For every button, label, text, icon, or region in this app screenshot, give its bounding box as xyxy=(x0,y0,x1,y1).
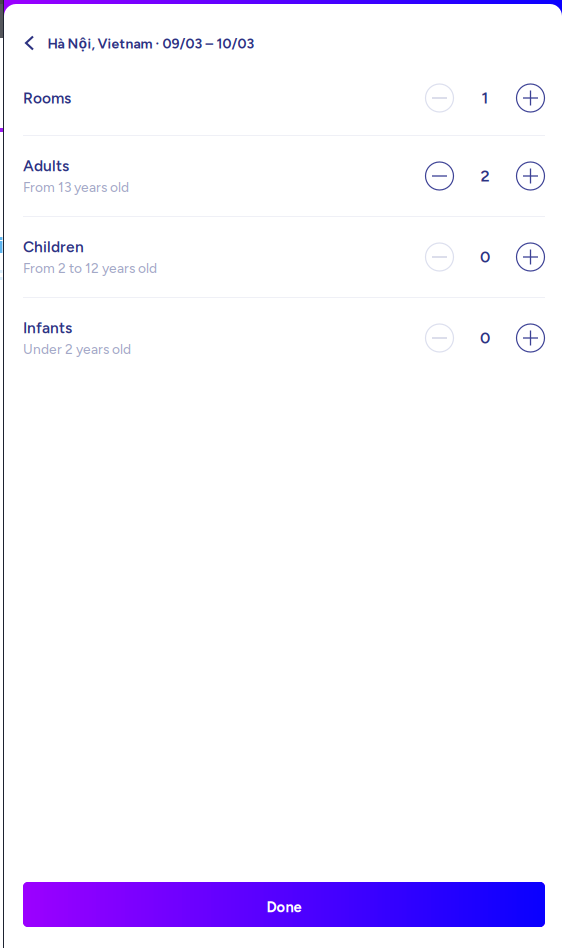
button[interactable]: Increase Infants xyxy=(516,323,545,352)
button[interactable]: Increase Children xyxy=(516,242,545,271)
button[interactable]: Increase Adults xyxy=(516,161,545,190)
staticText: 0 xyxy=(480,247,490,267)
staticText: Adults xyxy=(23,156,69,175)
staticText: Infants xyxy=(23,318,72,337)
staticText: 2 xyxy=(480,166,489,186)
staticText: Rooms xyxy=(23,89,71,107)
button[interactable]: Done xyxy=(23,882,545,927)
button[interactable]: Decrease Rooms xyxy=(425,83,454,112)
staticText: 1 xyxy=(481,88,488,108)
button[interactable]: Back xyxy=(20,28,38,58)
staticText: Children xyxy=(23,237,84,256)
staticText: From 2 to 12 years old xyxy=(23,260,157,276)
staticText: Done xyxy=(266,898,301,916)
staticText: Hà Nội, Vietnam · 09/03 – 10/03 xyxy=(47,34,254,52)
button[interactable]: Decrease Children xyxy=(425,242,454,271)
staticText: 0 xyxy=(480,328,490,348)
button[interactable]: Decrease Infants xyxy=(425,323,454,352)
button[interactable]: Increase Rooms xyxy=(516,83,545,112)
staticText: Under 2 years old xyxy=(23,341,131,357)
staticText: From 13 years old xyxy=(23,179,129,195)
button[interactable]: Decrease Adults xyxy=(425,161,454,190)
